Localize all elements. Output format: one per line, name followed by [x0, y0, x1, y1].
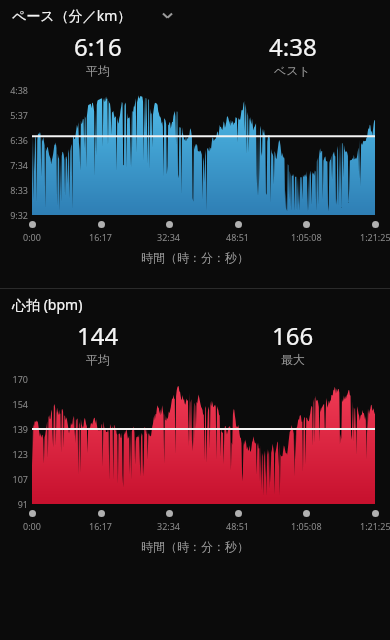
other: Select metric — [154, 2, 180, 28]
staticText: 48:51 — [226, 520, 250, 532]
staticText: 最大 — [281, 352, 305, 367]
staticText: 平均 — [86, 63, 110, 78]
staticText: 1:21:25 — [360, 231, 390, 243]
staticText: 170 — [0, 373, 28, 385]
staticText: 心拍 (bpm) — [12, 295, 83, 314]
staticText: 時間（時：分：秒） — [141, 250, 249, 265]
staticText: 4:38 — [0, 84, 28, 96]
staticText: 9:32 — [0, 209, 28, 221]
staticText: 16:17 — [89, 520, 113, 532]
staticText: 平均 — [86, 352, 110, 367]
button[interactable]: ペース（分／km） — [0, 0, 390, 30]
staticText: 123 — [0, 448, 28, 460]
staticText: ベスト — [274, 63, 311, 78]
staticText: 107 — [0, 473, 28, 485]
staticText: 139 — [0, 423, 28, 435]
staticText: 166 — [272, 319, 314, 352]
staticText: 時間（時：分：秒） — [141, 539, 249, 554]
staticText: 91 — [0, 498, 28, 510]
staticText: 6:16 — [74, 30, 122, 63]
staticText: 0:00 — [23, 520, 41, 532]
staticText: 144 — [77, 319, 119, 352]
staticText: ペース（分／km） — [12, 6, 132, 25]
staticText: 154 — [0, 398, 28, 410]
staticText: 8:33 — [0, 184, 28, 196]
staticText: 16:17 — [89, 231, 113, 243]
staticText: 5:37 — [0, 109, 28, 121]
staticText: 32:34 — [157, 520, 181, 532]
staticText: 32:34 — [157, 231, 181, 243]
staticText: 1:21:25 — [360, 520, 390, 532]
staticText: 7:34 — [0, 159, 28, 171]
button[interactable]: 心拍 (bpm) — [0, 289, 390, 319]
staticText: 1:05:08 — [291, 231, 322, 243]
staticText: 0:00 — [23, 231, 41, 243]
staticText: 1:05:08 — [291, 520, 322, 532]
staticText: 6:36 — [0, 134, 28, 146]
staticText: 48:51 — [226, 231, 250, 243]
staticText: 4:38 — [269, 30, 317, 63]
